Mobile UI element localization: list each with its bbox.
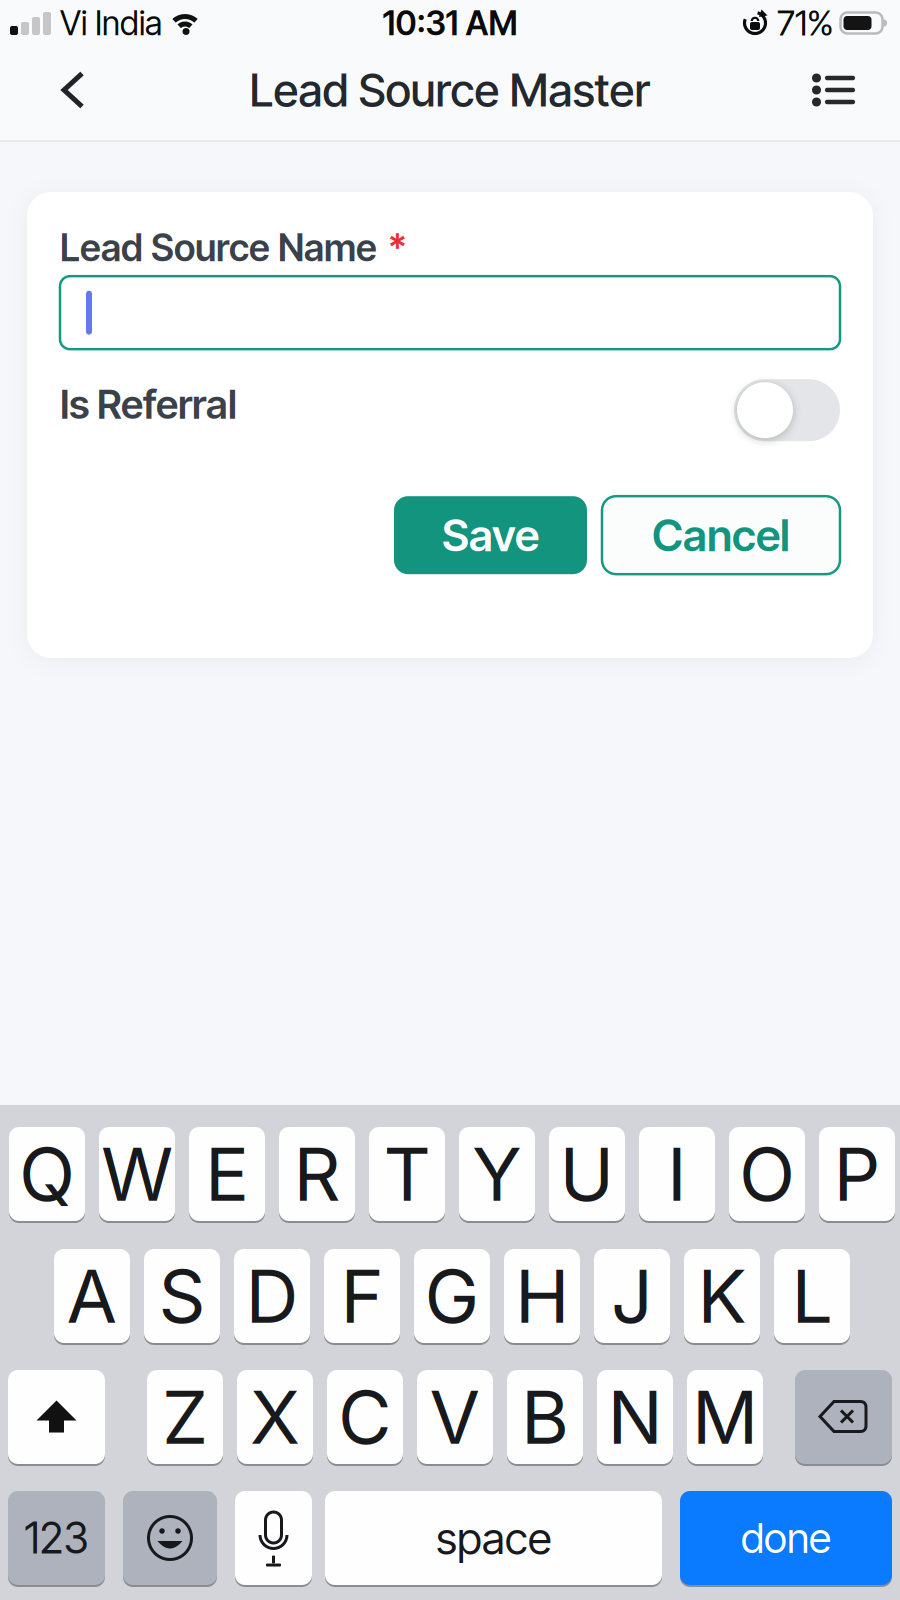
button[interactable]: Save (394, 496, 587, 574)
staticText: J (611, 1252, 653, 1340)
button[interactable]: Y (459, 1127, 535, 1221)
button[interactable]: 123 (8, 1491, 105, 1585)
staticText: E (205, 1130, 249, 1218)
button[interactable]: V (417, 1370, 493, 1464)
staticText: W (101, 1130, 173, 1218)
staticText: 123 (24, 1512, 88, 1564)
button[interactable]: C (327, 1370, 403, 1464)
staticText: S (158, 1252, 205, 1340)
button[interactable]: Emoji (123, 1491, 217, 1585)
staticText: Lead Source Master (249, 63, 650, 117)
button[interactable]: J (594, 1249, 670, 1343)
button[interactable]: E (189, 1127, 265, 1221)
button[interactable]: B (507, 1370, 583, 1464)
button[interactable]: Cancel (602, 496, 840, 574)
button[interactable]: L (774, 1249, 850, 1343)
button[interactable]: O (729, 1127, 805, 1221)
staticText: H (515, 1252, 569, 1340)
staticText: T (383, 1130, 430, 1218)
staticText: Z (162, 1373, 208, 1461)
button[interactable]: G (414, 1249, 490, 1343)
button[interactable]: done (680, 1491, 892, 1585)
staticText: P (833, 1130, 880, 1218)
button[interactable]: Q (9, 1127, 85, 1221)
button[interactable]: N (597, 1370, 673, 1464)
staticText: D (245, 1252, 298, 1340)
staticText: Save (442, 509, 539, 562)
button[interactable]: Back (0, 75, 105, 113)
button[interactable]: Is Referral (734, 379, 840, 441)
staticText: Vi India (60, 3, 162, 43)
button[interactable]: T (369, 1127, 445, 1221)
staticText: L (791, 1252, 832, 1340)
staticText: * (388, 225, 407, 270)
button[interactable]: M (687, 1370, 763, 1464)
staticText: C (338, 1373, 392, 1461)
staticText: Y (472, 1130, 522, 1218)
staticText: space (436, 1511, 551, 1565)
staticText: done (741, 1513, 831, 1563)
button[interactable]: Shift (8, 1370, 105, 1464)
staticText: V (429, 1373, 480, 1461)
button[interactable]: H (504, 1249, 580, 1343)
staticText: A (66, 1252, 117, 1340)
button[interactable]: List (812, 77, 900, 111)
button[interactable]: Z (147, 1370, 223, 1464)
staticText: Lead Source Name (60, 225, 377, 270)
staticText: O (739, 1130, 795, 1218)
button[interactable]: X (237, 1370, 313, 1464)
staticText: R (293, 1130, 340, 1218)
button[interactable]: D (234, 1249, 310, 1343)
button[interactable]: Delete (795, 1370, 892, 1464)
button[interactable]: U (549, 1127, 625, 1221)
button[interactable]: P (819, 1127, 895, 1221)
staticText: Cancel (652, 509, 790, 562)
staticText: N (607, 1373, 662, 1461)
button[interactable]: S (144, 1249, 220, 1343)
staticText: 10:31 AM (382, 3, 517, 43)
button[interactable]: W (99, 1127, 175, 1221)
staticText: X (250, 1373, 300, 1461)
button[interactable]: F (324, 1249, 400, 1343)
button[interactable]: R (279, 1127, 355, 1221)
staticText: U (559, 1130, 614, 1218)
button[interactable]: Lead Source Name (60, 276, 840, 349)
button[interactable]: I (639, 1127, 715, 1221)
staticText: Is Referral (60, 380, 237, 428)
button[interactable]: A (54, 1249, 130, 1343)
staticText: F (340, 1252, 383, 1340)
staticText: I (667, 1130, 687, 1218)
button[interactable]: Dictate (235, 1491, 312, 1585)
staticText: M (692, 1373, 758, 1461)
staticText: B (521, 1373, 569, 1461)
staticText: K (697, 1252, 746, 1340)
staticText: 71% (777, 2, 834, 44)
button[interactable]: K (684, 1249, 760, 1343)
staticText: Q (19, 1130, 75, 1218)
button[interactable]: space (325, 1491, 662, 1585)
staticText: G (424, 1252, 479, 1340)
